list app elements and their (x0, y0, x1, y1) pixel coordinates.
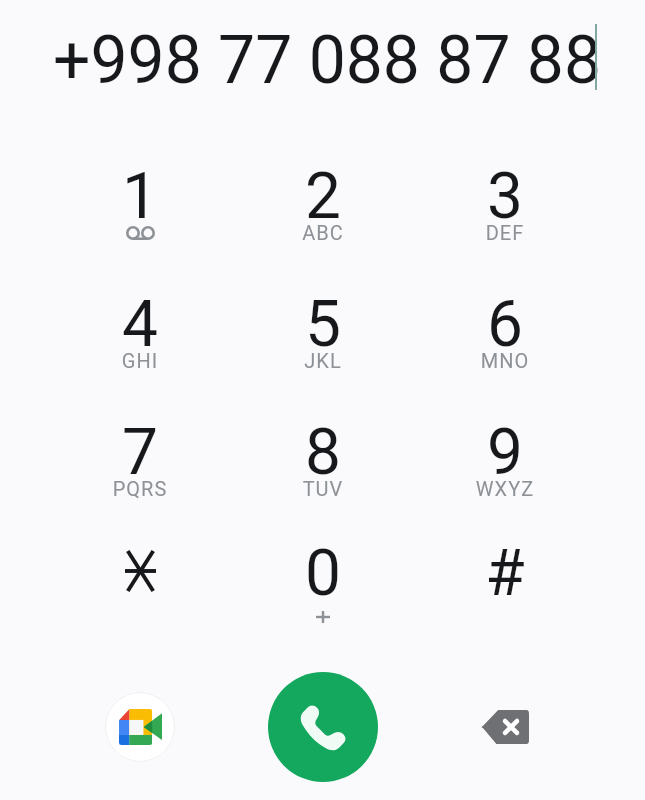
staticText: 1 (65, 159, 215, 234)
button[interactable]: +998 77 088 87 88 (0, 0, 645, 120)
staticText: GHI (65, 349, 215, 372)
button[interactable]: 6 (430, 271, 580, 389)
button[interactable]: 8 (248, 399, 398, 517)
staticText: 3 (430, 159, 580, 234)
staticText: ABC (248, 221, 398, 244)
button[interactable]: # (430, 520, 580, 638)
staticText: # (430, 536, 580, 611)
staticText: WXYZ (430, 477, 580, 500)
button[interactable]: 5 (248, 271, 398, 389)
button[interactable]: 9 (430, 399, 580, 517)
staticText: +998 77 088 87 88 (53, 22, 602, 99)
button[interactable]: 2 (248, 143, 398, 261)
staticText: 9 (430, 415, 580, 490)
staticText: 6 (430, 287, 580, 362)
staticText: TUV (248, 477, 398, 500)
button[interactable]: 3 (430, 143, 580, 261)
button[interactable]: 1 (65, 143, 215, 261)
staticText: 2 (248, 159, 398, 234)
staticText: MNO (430, 349, 580, 372)
button[interactable]: Call (268, 672, 378, 782)
staticText: 5 (248, 287, 398, 362)
button[interactable]: 0 (248, 520, 398, 638)
button[interactable] (65, 520, 215, 638)
button[interactable]: 7 (65, 399, 215, 517)
button[interactable]: Video call with Google Meet (105, 692, 175, 762)
button[interactable]: Backspace (470, 692, 540, 762)
staticText: JKL (248, 349, 398, 372)
staticText: DEF (430, 221, 580, 244)
button[interactable]: 4 (65, 271, 215, 389)
staticText: 4 (65, 287, 215, 362)
staticText: 7 (65, 415, 215, 490)
staticText: PQRS (65, 477, 215, 500)
staticText: 0 (248, 536, 398, 611)
staticText: 8 (248, 415, 398, 490)
